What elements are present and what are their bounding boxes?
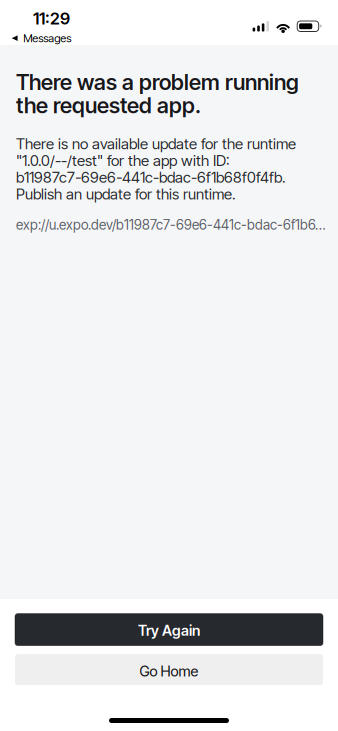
staticText: 11:29 bbox=[33, 8, 70, 28]
staticText: Go Home bbox=[139, 662, 198, 680]
staticText: There was a problem running the requeste… bbox=[16, 69, 299, 119]
staticText: There is no available update for the run… bbox=[16, 135, 296, 203]
staticText: exp://u.expo.dev/b11987c7-69e6-441c-bdac… bbox=[16, 216, 326, 233]
staticText: Try Again bbox=[138, 622, 200, 639]
button[interactable]: Messages bbox=[9, 28, 74, 48]
button[interactable]: Go Home bbox=[15, 654, 323, 685]
staticText: Messages bbox=[23, 31, 71, 45]
button[interactable]: Try Again bbox=[15, 614, 323, 646]
